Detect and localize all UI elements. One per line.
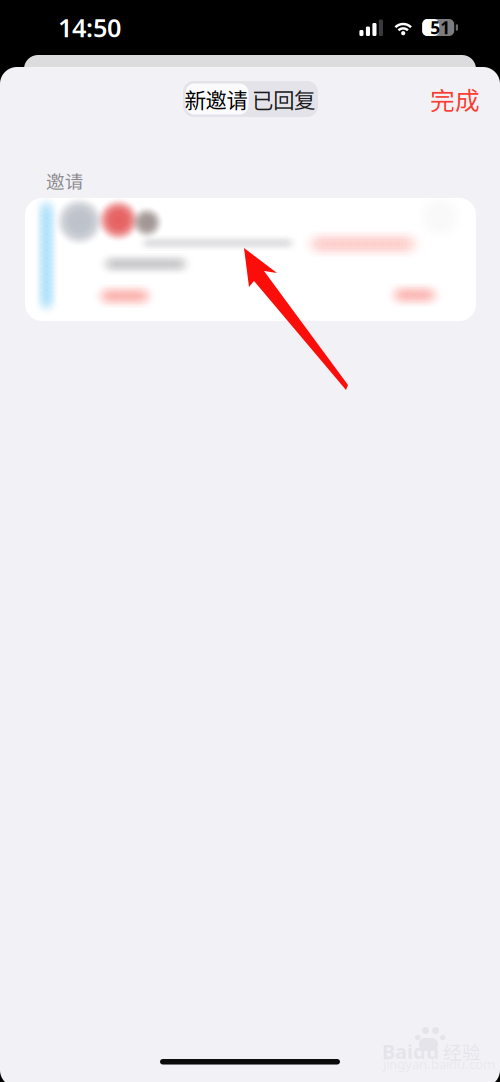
staticText: 经验 <box>443 1038 481 1065</box>
button[interactable]: 已回复 <box>249 81 318 117</box>
staticText: jingyan.baidu.com <box>383 1055 495 1073</box>
button[interactable]: 新邀请 <box>183 81 249 117</box>
staticText: Baidu <box>382 1038 439 1065</box>
button[interactable]: 完成 <box>424 79 486 119</box>
staticText: 14:50 <box>58 11 121 44</box>
staticText: 已回复 <box>252 84 315 114</box>
staticText: 51 <box>430 16 450 39</box>
staticText: 完成 <box>430 81 480 117</box>
staticText: 邀请 <box>46 167 84 194</box>
button[interactable] <box>25 198 476 321</box>
staticText: 新邀请 <box>184 84 247 114</box>
